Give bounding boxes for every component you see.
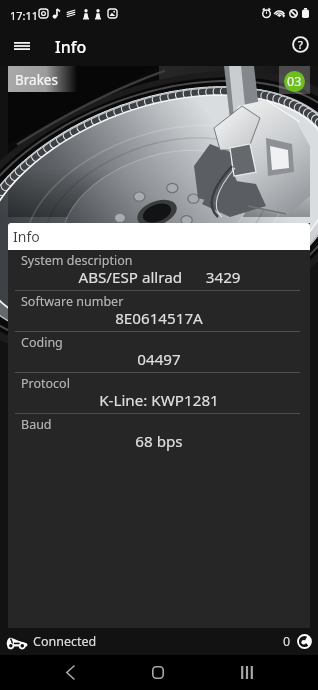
- staticText: 04497: [137, 349, 181, 370]
- button[interactable]: Coding: [8, 332, 310, 373]
- staticText: ?: [298, 37, 303, 52]
- staticText: Brakes: [15, 71, 58, 89]
- button[interactable]: Home: [137, 657, 179, 688]
- button[interactable]: Data usage: [281, 633, 314, 650]
- button[interactable]: Brakes: [8, 66, 310, 217]
- staticText: Protocol: [21, 375, 70, 392]
- button[interactable]: Open navigation menu: [4, 28, 40, 64]
- staticText: K-Line: KWP1281: [99, 390, 219, 411]
- button[interactable]: Software number: [8, 291, 310, 332]
- button[interactable]: Help: [282, 26, 318, 62]
- button[interactable]: Protocol: [8, 373, 310, 414]
- staticText: System description: [21, 252, 133, 269]
- staticText: Info: [13, 227, 40, 246]
- staticText: 8E0614517A: [115, 308, 203, 329]
- staticText: 03: [287, 73, 302, 90]
- staticText: Software number: [21, 293, 124, 310]
- button[interactable]: Back: [48, 657, 90, 688]
- staticText: Connected: [33, 633, 97, 650]
- button[interactable]: Baud: [8, 414, 310, 454]
- staticText: ABS/ESP allrad 3429: [78, 267, 241, 288]
- staticText: Baud: [21, 416, 52, 433]
- button[interactable]: Recent apps: [226, 657, 268, 688]
- staticText: 0: [283, 633, 291, 650]
- staticText: 68 bps: [135, 431, 183, 452]
- button[interactable]: Info: [8, 223, 310, 250]
- button[interactable]: System description: [8, 250, 310, 291]
- staticText: Info: [55, 36, 87, 58]
- staticText: Coding: [21, 334, 63, 351]
- button[interactable]: Connected: [4, 630, 97, 653]
- staticText: 17:11: [10, 8, 39, 23]
